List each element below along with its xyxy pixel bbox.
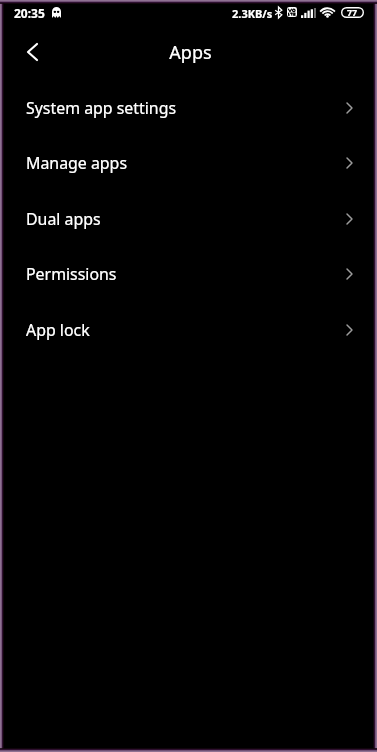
- staticText: Permissions: [26, 263, 117, 285]
- staticText: 77: [347, 7, 358, 18]
- staticText: App lock: [26, 319, 90, 341]
- staticText: Apps: [169, 40, 212, 65]
- staticText: 2.3KB/s: [232, 6, 273, 21]
- button[interactable]: Back: [8, 28, 56, 76]
- staticText: 20:35: [14, 5, 45, 21]
- button[interactable]: App lock: [0, 302, 377, 358]
- button[interactable]: Dual apps: [0, 191, 377, 247]
- staticText: Dual apps: [26, 208, 101, 230]
- staticText: Manage apps: [26, 152, 128, 174]
- staticText: System app settings: [26, 97, 177, 119]
- button[interactable]: Permissions: [0, 246, 377, 302]
- button[interactable]: System app settings: [0, 80, 377, 136]
- button[interactable]: Manage apps: [0, 135, 377, 191]
